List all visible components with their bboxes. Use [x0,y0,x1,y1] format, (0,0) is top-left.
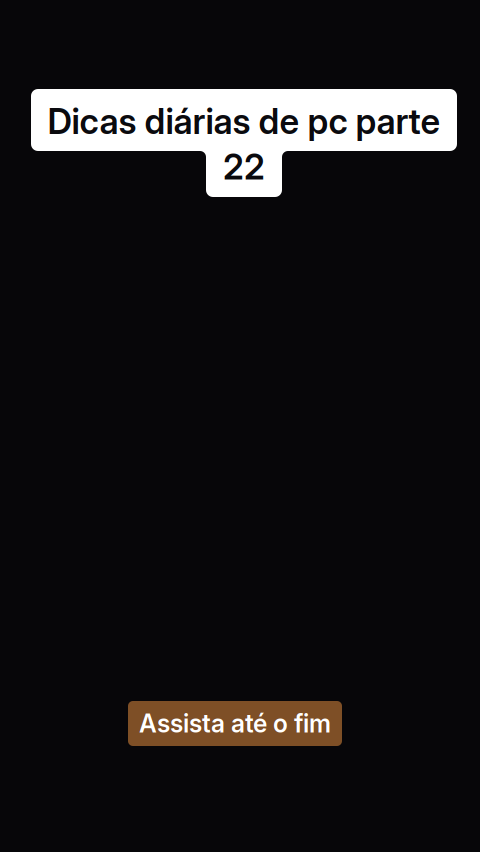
staticText: Assista até o fim [139,709,331,738]
button[interactable]: Assista até o fim [128,701,342,746]
staticText: Dicas diárias de pc parte [47,100,440,142]
staticText: 22 [223,146,265,188]
